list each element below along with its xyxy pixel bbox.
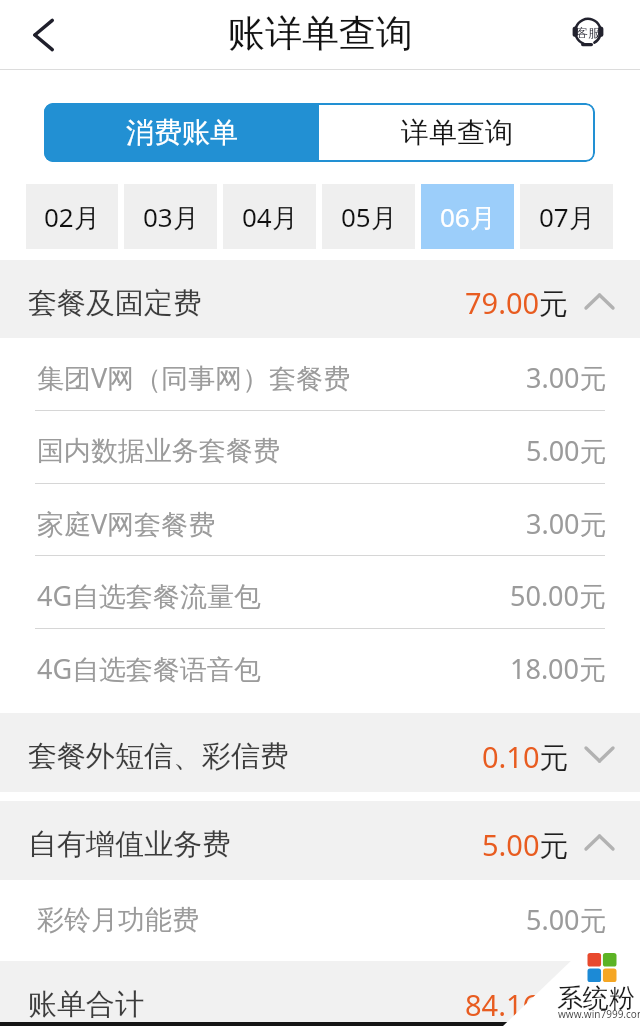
button[interactable]: 返回: [0, 0, 88, 69]
staticText: 06月: [440, 199, 496, 235]
button[interactable]: 详单查询: [319, 103, 595, 162]
staticText: 消费账单: [126, 115, 238, 150]
staticText: 50.00元: [510, 577, 607, 614]
button[interactable]: 04月: [223, 184, 316, 249]
staticText: 02月: [44, 199, 100, 235]
staticText: 彩铃月功能费: [37, 903, 199, 937]
button[interactable]: 套餐外短信、彩信费: [0, 713, 640, 792]
staticText: 系统粉: [557, 982, 635, 1015]
button[interactable]: 07月: [520, 184, 613, 249]
staticText: 5.00元: [526, 432, 607, 469]
button[interactable]: 03月: [124, 184, 217, 249]
staticText: 18.00元: [510, 650, 607, 687]
staticText: 套餐及固定费: [28, 285, 202, 322]
button[interactable]: 4G自选套餐流量包: [0, 556, 640, 629]
staticText: 84.16元: [465, 985, 569, 1025]
staticText: 家庭V网套餐费: [37, 505, 216, 542]
button[interactable]: 套餐及固定费: [0, 260, 640, 338]
staticText: 套餐外短信、彩信费: [28, 738, 289, 775]
button[interactable]: 客服: [536, 0, 640, 69]
button[interactable]: 账单合计: [0, 961, 640, 1026]
staticText: 自有增值业务费: [28, 826, 231, 863]
staticText: 国内数据业务套餐费: [37, 434, 280, 468]
button[interactable]: 消费账单: [44, 103, 319, 162]
staticText: 集团V网（同事网）套餐费: [37, 359, 351, 396]
staticText: 账单合计: [28, 986, 144, 1023]
button[interactable]: 02月: [26, 184, 118, 249]
button[interactable]: 集团V网（同事网）套餐费: [0, 338, 640, 411]
staticText: 0.10元: [482, 737, 569, 777]
button[interactable]: 家庭V网套餐费: [0, 484, 640, 556]
button[interactable]: 国内数据业务套餐费: [0, 411, 640, 484]
staticText: 3.00元: [526, 505, 607, 542]
staticText: 客服: [576, 25, 600, 40]
button[interactable]: 自有增值业务费: [0, 801, 640, 880]
staticText: 5.00元: [526, 901, 607, 938]
staticText: 4G自选套餐语音包: [37, 650, 262, 687]
staticText: 3.00元: [526, 359, 607, 396]
staticText: 05月: [341, 199, 397, 235]
staticText: 79.00元: [465, 283, 569, 323]
staticText: 04月: [242, 199, 298, 235]
button[interactable]: 彩铃月功能费: [0, 880, 640, 961]
staticText: 4G自选套餐流量包: [37, 577, 262, 614]
staticText: 账详单查询: [228, 10, 413, 57]
button[interactable]: 4G自选套餐语音包: [0, 629, 640, 702]
button[interactable]: 06月: [421, 184, 514, 249]
staticText: 03月: [143, 199, 199, 235]
button[interactable]: 05月: [322, 184, 415, 249]
staticText: 07月: [539, 199, 595, 235]
staticText: 5.00元: [482, 825, 569, 865]
staticText: www.win7999.com: [558, 1007, 640, 1021]
staticText: 详单查询: [401, 115, 513, 150]
